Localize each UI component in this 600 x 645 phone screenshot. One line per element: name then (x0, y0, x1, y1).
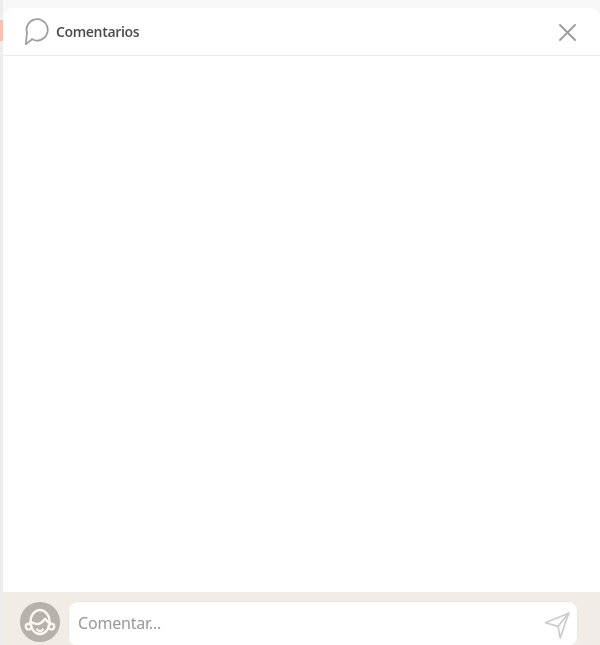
button[interactable] (544, 611, 572, 639)
staticText: Comentar... (78, 612, 162, 634)
staticText: Comentarios (56, 22, 140, 41)
button[interactable]: Comentar... (68, 601, 578, 645)
button[interactable] (552, 17, 582, 47)
